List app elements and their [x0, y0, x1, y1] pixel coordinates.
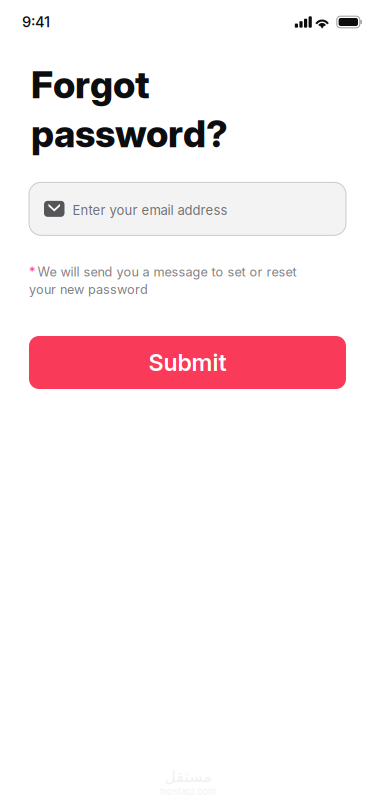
staticText: *	[29, 264, 35, 280]
staticText: password?	[31, 111, 228, 156]
button[interactable]: Enter your email address	[29, 182, 346, 235]
staticText: your new password	[29, 282, 148, 297]
staticText: 9:41	[22, 13, 50, 31]
button[interactable]: Submit	[29, 336, 346, 389]
staticText: Submit	[148, 348, 226, 377]
staticText: We will send you a message to set or res…	[37, 264, 296, 280]
staticText: Forgot	[31, 62, 150, 107]
staticText: mostaql.com	[159, 786, 216, 797]
staticText: Enter your email address	[72, 202, 227, 218]
staticText: مستقل	[164, 768, 211, 786]
